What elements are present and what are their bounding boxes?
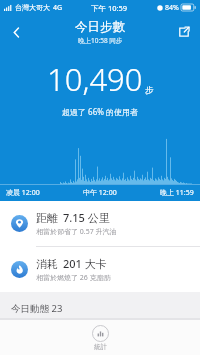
staticText: 步	[145, 85, 154, 96]
staticText: 晚上 11:59	[160, 188, 194, 198]
staticText: 相當於節省了 0.57 升汽油	[36, 227, 117, 237]
staticText: 中午 12:00	[83, 188, 117, 198]
staticText: 201 大卡	[63, 256, 107, 271]
staticText: 距離	[36, 211, 58, 225]
button[interactable]: 消耗	[0, 247, 200, 292]
staticText: 台灣大哥大	[15, 3, 50, 12]
staticText: 凌晨 12:00	[6, 188, 40, 198]
staticText: 84%	[165, 3, 179, 13]
staticText: 晚上10:58 同步	[78, 36, 123, 45]
staticText: 超過了 66% 的使用者	[62, 106, 138, 117]
staticText: 10,490	[47, 58, 143, 100]
staticText: 今日步數	[75, 19, 125, 35]
staticText: 4G	[53, 3, 63, 13]
staticText: 消耗	[36, 257, 58, 271]
staticText: 今日動態 23	[11, 302, 63, 315]
button[interactable]: Share	[168, 16, 200, 48]
staticText: 下午 10:59	[91, 3, 128, 13]
staticText: 7.15 公里	[63, 210, 110, 225]
button[interactable]: 統計	[80, 322, 121, 354]
staticText: 相當於燃燒了 26 克脂肪	[36, 273, 111, 283]
button[interactable]: Back	[0, 16, 32, 48]
button[interactable]: 距離	[0, 201, 200, 246]
staticText: 統計	[94, 343, 107, 351]
